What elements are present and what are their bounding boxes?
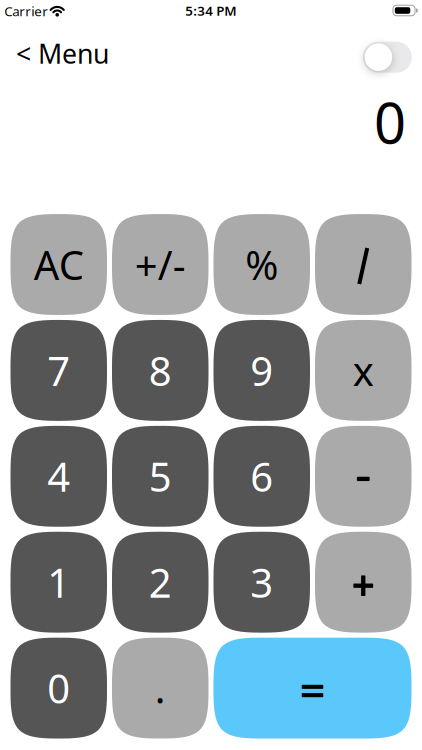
button[interactable]: 8 xyxy=(112,320,208,421)
button[interactable]: AC xyxy=(10,214,107,315)
button[interactable]: 2 xyxy=(112,532,208,633)
button[interactable]: 9 xyxy=(213,320,310,421)
button[interactable] xyxy=(315,426,411,527)
staticText: 4 xyxy=(47,450,70,503)
staticText: 7 xyxy=(47,344,70,397)
staticText: < Menu xyxy=(16,36,109,71)
staticText: 3 xyxy=(250,556,273,609)
button[interactable]: 6 xyxy=(213,426,310,527)
staticText: Carrier xyxy=(4,2,48,20)
staticText: 9 xyxy=(250,344,273,397)
staticText: % xyxy=(245,238,278,291)
button[interactable]: 7 xyxy=(10,320,107,421)
button[interactable]: % xyxy=(213,214,310,315)
staticText: 1 xyxy=(47,556,70,609)
staticText: 5 xyxy=(149,450,172,503)
button[interactable] xyxy=(315,532,411,633)
staticText: 2 xyxy=(149,556,172,609)
button[interactable]: 3 xyxy=(213,532,310,633)
button[interactable]: 0 xyxy=(10,638,107,739)
staticText: x xyxy=(353,344,374,397)
button[interactable]: 5 xyxy=(112,426,208,527)
button[interactable]: Toggle xyxy=(363,42,412,73)
button[interactable]: 4 xyxy=(10,426,107,527)
button[interactable] xyxy=(315,214,411,315)
staticText: AC xyxy=(34,238,84,291)
staticText: 8 xyxy=(149,344,172,397)
button[interactable]: x xyxy=(315,320,411,421)
staticText: +/- xyxy=(135,238,186,291)
staticText: 0 xyxy=(374,85,406,159)
staticText: . xyxy=(155,661,166,715)
staticText: 0 xyxy=(47,661,70,715)
staticText: 6 xyxy=(250,450,273,503)
button[interactable]: . xyxy=(112,638,208,739)
button[interactable] xyxy=(213,638,411,739)
staticText: 5:34 PM xyxy=(185,2,236,19)
button[interactable]: 1 xyxy=(10,532,107,633)
button[interactable]: +/- xyxy=(112,214,208,315)
button[interactable]: < Menu xyxy=(16,36,109,71)
